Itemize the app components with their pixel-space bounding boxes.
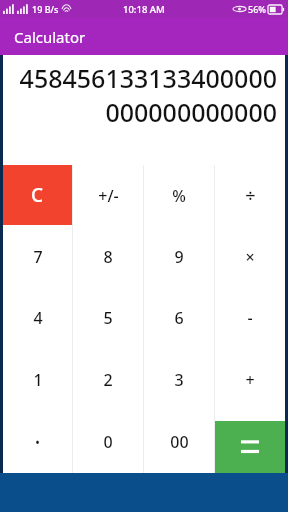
staticText: 56% bbox=[248, 3, 266, 15]
staticText: 2 bbox=[103, 369, 113, 391]
button[interactable]: 2 bbox=[73, 349, 143, 411]
staticText: 9 bbox=[174, 246, 184, 268]
staticText: % bbox=[172, 185, 186, 207]
staticText: 1 bbox=[33, 369, 43, 391]
button[interactable]: + bbox=[215, 349, 285, 411]
button[interactable]: 8 bbox=[73, 226, 143, 287]
staticText: 3 bbox=[174, 369, 184, 391]
staticText: ÷ bbox=[245, 183, 256, 208]
button[interactable]: 9 bbox=[144, 226, 214, 287]
staticText: × bbox=[245, 246, 255, 268]
staticText: 10:18 AM bbox=[123, 3, 165, 16]
button[interactable]: 0 bbox=[73, 411, 143, 473]
button[interactable]: 4 bbox=[3, 287, 72, 349]
button[interactable]: - bbox=[215, 287, 285, 349]
staticText: - bbox=[247, 307, 253, 329]
button[interactable]: ÷ bbox=[215, 165, 285, 226]
staticText: Calculator bbox=[14, 27, 86, 47]
button[interactable]: C bbox=[3, 165, 72, 226]
button[interactable]: 7 bbox=[3, 226, 72, 287]
staticText: 458456133133400000000000000000 bbox=[11, 61, 277, 129]
button[interactable]: 5 bbox=[73, 287, 143, 349]
staticText: + bbox=[245, 369, 255, 391]
staticText: 5 bbox=[103, 307, 113, 329]
staticText: 8 bbox=[103, 246, 113, 268]
button[interactable]: • bbox=[3, 411, 72, 473]
button[interactable]: 00 bbox=[144, 411, 214, 473]
staticText: C bbox=[31, 182, 44, 208]
staticText: +/- bbox=[98, 185, 119, 207]
button[interactable]: % bbox=[144, 165, 214, 226]
button[interactable]: +/- bbox=[73, 165, 143, 226]
button[interactable]: Equals bbox=[215, 411, 285, 473]
staticText: • bbox=[35, 434, 40, 450]
button[interactable]: 1 bbox=[3, 349, 72, 411]
staticText: 4 bbox=[33, 307, 43, 329]
button[interactable]: 3 bbox=[144, 349, 214, 411]
staticText: 7 bbox=[33, 246, 43, 268]
staticText: 00 bbox=[170, 431, 189, 453]
staticText: 0 bbox=[103, 431, 113, 453]
staticText: 6 bbox=[174, 307, 184, 329]
button[interactable]: × bbox=[215, 226, 285, 287]
button[interactable]: 6 bbox=[144, 287, 214, 349]
staticText: 19 B/s bbox=[32, 3, 59, 15]
